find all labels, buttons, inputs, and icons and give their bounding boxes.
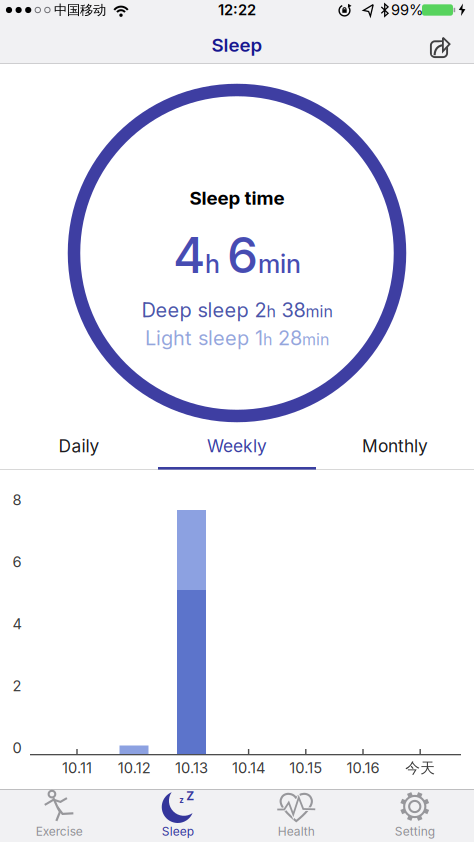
staticText: Sleep [162, 824, 194, 839]
staticText: Setting [395, 824, 435, 839]
button[interactable]: Daily [0, 425, 158, 467]
button[interactable]: Weekly [158, 425, 316, 467]
staticText: 10.14 [232, 759, 265, 777]
button[interactable] [424, 36, 452, 58]
staticText: 2 [12, 677, 21, 695]
button[interactable]: Exercise [0, 789, 118, 842]
staticText: Sleep time [189, 187, 284, 209]
staticText: 6 [12, 553, 21, 571]
staticText: z [179, 795, 184, 805]
staticText: Exercise [36, 824, 83, 839]
staticText: 99% [391, 1, 423, 19]
staticText: 4 [12, 615, 21, 633]
staticText: 10.15 [289, 759, 322, 777]
staticText: 8 [12, 491, 21, 509]
button[interactable]: z [118, 789, 237, 842]
staticText: 4h 6min [173, 226, 301, 284]
staticText: 12:22 [218, 1, 256, 19]
staticText: Deep sleep 2h 38min [141, 298, 332, 322]
staticText: Health [278, 824, 315, 839]
button[interactable]: Setting [355, 789, 474, 842]
staticText: Z [186, 789, 194, 803]
staticText: 中国移动 [54, 2, 106, 18]
staticText: Daily [58, 436, 99, 456]
staticText: 10.13 [175, 759, 208, 777]
staticText: Monthly [362, 436, 428, 456]
staticText: 今天 [405, 759, 435, 777]
button[interactable]: Monthly [316, 425, 474, 467]
staticText: Light sleep 1h 28min [145, 326, 329, 350]
staticText: 0 [12, 739, 21, 757]
staticText: Sleep [211, 34, 262, 56]
staticText: Weekly [207, 436, 267, 456]
button[interactable]: Health [237, 789, 355, 842]
staticText: 10.16 [346, 759, 379, 777]
staticText: 10.11 [62, 759, 92, 777]
staticText: 10.12 [118, 759, 151, 777]
